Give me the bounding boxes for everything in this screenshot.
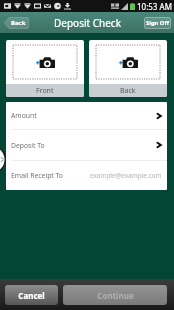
button[interactable]: Open navigation drawer — [0, 145, 6, 174]
button[interactable]: Cancel — [5, 285, 58, 305]
button[interactable]: Deposit To — [6, 130, 167, 160]
staticText: Sign Off — [146, 19, 169, 27]
button[interactable]: Continue — [63, 285, 167, 305]
staticText: Amount — [11, 111, 37, 120]
staticText: Email Receipt To — [11, 171, 63, 180]
button[interactable]: Back — [89, 40, 167, 97]
button[interactable]: Amount — [6, 102, 167, 129]
staticText: Front — [36, 86, 54, 96]
staticText: Cancel — [18, 290, 45, 301]
staticText: Deposit To — [11, 141, 45, 150]
staticText: Continue — [97, 290, 134, 301]
staticText: Deposit Check — [54, 16, 121, 30]
button[interactable]: Front — [6, 40, 84, 97]
staticText: example@example.com — [90, 171, 162, 180]
button[interactable]: Email Receipt To — [6, 161, 167, 190]
staticText: 10:53 AM — [137, 1, 172, 12]
button[interactable]: Sign Off — [144, 17, 171, 29]
button[interactable]: Back — [4, 17, 29, 29]
staticText: Back — [120, 86, 136, 96]
staticText: Back — [11, 19, 26, 27]
